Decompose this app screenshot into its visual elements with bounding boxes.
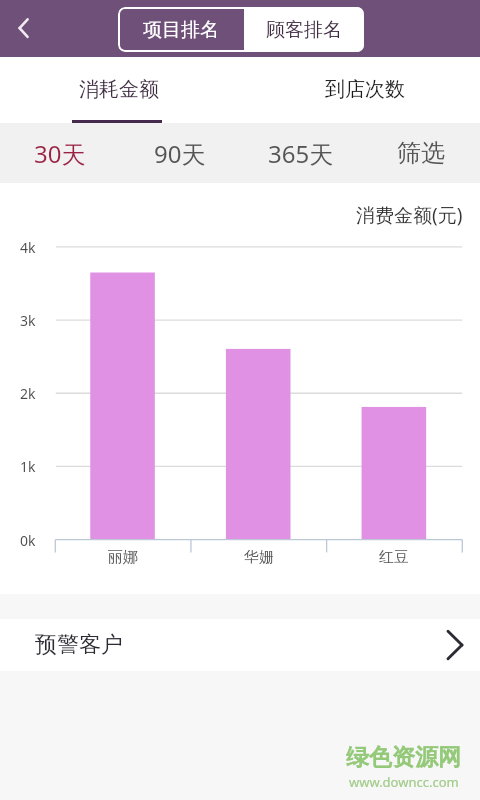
staticText: 红豆 (379, 548, 409, 567)
button[interactable]: 消耗金额 (0, 57, 240, 123)
button[interactable]: 到店次数 (240, 57, 480, 123)
button[interactable]: 项目排名 (118, 7, 244, 52)
staticText: 到店次数 (325, 77, 405, 102)
staticText: 项目排名 (143, 18, 219, 42)
staticText: 0k (20, 531, 36, 550)
staticText: 华姗 (244, 548, 274, 567)
staticText: 1k (20, 457, 36, 476)
button[interactable]: 筛选 (362, 123, 480, 183)
staticText: 预警客户 (35, 631, 123, 659)
staticText: 丽娜 (108, 548, 138, 567)
button[interactable]: Back (0, 0, 52, 57)
staticText: 30天 (34, 137, 86, 170)
staticText: 绿色资源网 (346, 743, 461, 772)
staticText: 筛选 (397, 138, 445, 168)
staticText: 顾客排名 (266, 18, 342, 42)
staticText: www.downcc.com (349, 773, 459, 791)
staticText: 3k (20, 311, 36, 330)
staticText: 4k (20, 238, 36, 257)
staticText: 消费金额(元) (356, 202, 463, 228)
button[interactable]: 30天 (0, 123, 120, 183)
staticText: 2k (20, 384, 36, 403)
staticText: 消耗金额 (79, 77, 159, 102)
staticText: 365天 (268, 137, 334, 170)
button[interactable]: 预警客户 (0, 619, 480, 671)
button[interactable]: 365天 (240, 123, 362, 183)
button[interactable]: 90天 (120, 123, 240, 183)
staticText: 90天 (154, 137, 206, 170)
button[interactable]: 顾客排名 (244, 7, 364, 52)
